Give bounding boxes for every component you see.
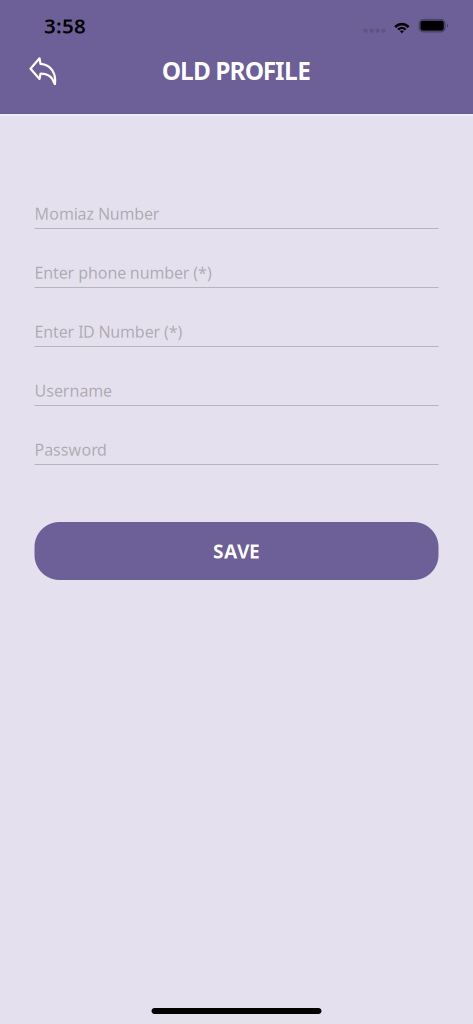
staticText: Username: [34, 380, 112, 401]
button[interactable]: Password: [34, 431, 438, 469]
staticText: OLD PROFILE: [162, 54, 311, 87]
staticText: Enter phone number (*): [34, 262, 212, 283]
staticText: Password: [34, 439, 107, 460]
staticText: Momiaz Number: [34, 203, 160, 224]
button[interactable]: Momiaz Number: [34, 195, 438, 233]
staticText: SAVE: [213, 538, 260, 564]
button[interactable]: Enter phone number (*): [34, 254, 438, 292]
button[interactable]: Back: [19, 47, 67, 95]
button[interactable]: Enter ID Number (*): [34, 313, 438, 351]
button[interactable]: SAVE: [34, 522, 438, 580]
button[interactable]: Username: [34, 372, 438, 410]
staticText: 3:58: [44, 12, 86, 40]
staticText: Enter ID Number (*): [34, 321, 182, 342]
